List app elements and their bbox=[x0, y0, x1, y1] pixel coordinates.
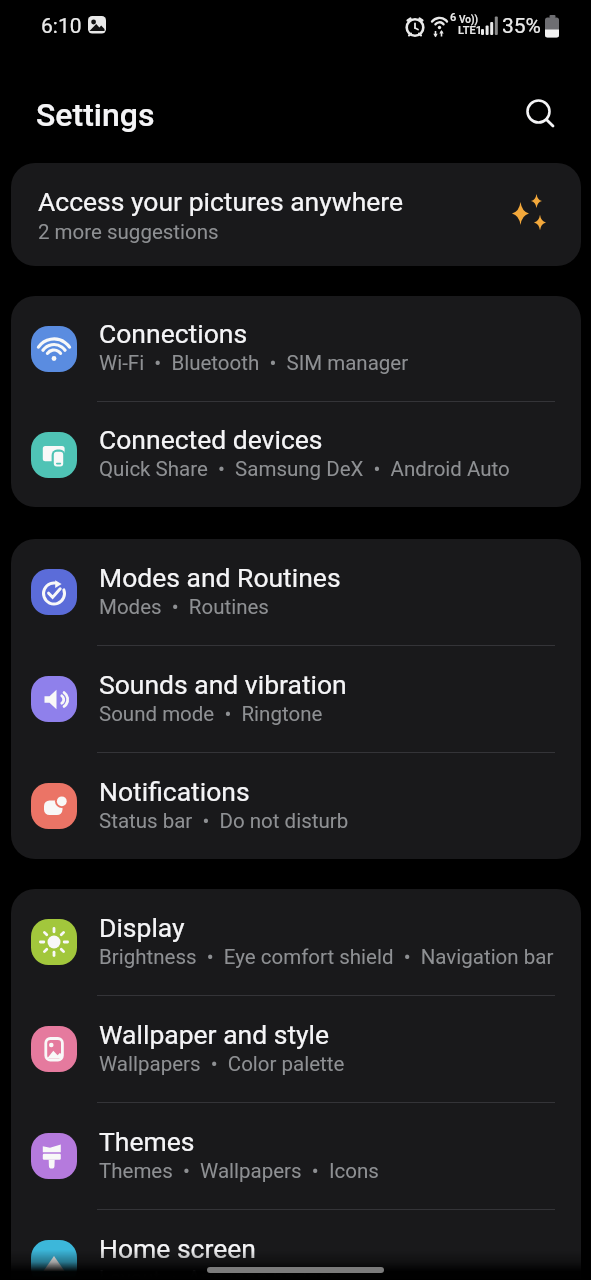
staticText: Vo)) bbox=[459, 14, 479, 26]
staticText: Connections bbox=[99, 318, 248, 349]
button[interactable]: Access your pictures anywhere bbox=[11, 163, 581, 266]
staticText: 6 bbox=[450, 11, 457, 24]
button[interactable]: Display bbox=[11, 889, 581, 995]
staticText: Quick Share • Samsung DeX • Android Auto bbox=[99, 457, 510, 481]
button[interactable]: Sounds and vibration bbox=[11, 646, 581, 752]
staticText: 35% bbox=[502, 14, 541, 39]
staticText: LTE1 bbox=[458, 24, 483, 37]
staticText: Themes bbox=[99, 1126, 195, 1157]
button[interactable]: Notifications bbox=[11, 753, 581, 859]
staticText: Settings bbox=[36, 96, 155, 134]
staticText: Notifications bbox=[99, 776, 250, 807]
staticText: Access your pictures anywhere bbox=[38, 186, 404, 217]
staticText: Brightness • Eye comfort shield • Naviga… bbox=[99, 945, 554, 969]
staticText: Wallpapers • Color palette bbox=[99, 1052, 345, 1076]
button[interactable] bbox=[518, 90, 562, 134]
staticText: 6:10 bbox=[41, 14, 82, 39]
staticText: Sound mode • Ringtone bbox=[99, 702, 323, 726]
staticText: 2 more suggestions bbox=[38, 220, 219, 244]
staticText: Themes • Wallpapers • Icons bbox=[99, 1159, 379, 1183]
staticText: Display bbox=[99, 912, 185, 943]
staticText: Modes • Routines bbox=[99, 595, 269, 619]
staticText: Wi-Fi • Bluetooth • SIM manager bbox=[99, 351, 409, 375]
staticText: Modes and Routines bbox=[99, 562, 341, 593]
button[interactable]: Connected devices bbox=[11, 402, 581, 507]
button[interactable]: Wallpaper and style bbox=[11, 996, 581, 1102]
staticText: Home screen bbox=[99, 1233, 256, 1264]
button[interactable]: Connections bbox=[11, 296, 581, 401]
staticText: Wallpaper and style bbox=[99, 1019, 330, 1050]
button[interactable]: Home screen bbox=[11, 1210, 581, 1280]
staticText: Connected devices bbox=[99, 424, 323, 455]
button[interactable]: Themes bbox=[11, 1103, 581, 1209]
button[interactable]: Modes and Routines bbox=[11, 539, 581, 645]
staticText: Layout • App icon badges bbox=[99, 1266, 341, 1280]
staticText: Sounds and vibration bbox=[99, 669, 347, 700]
staticText: Status bar • Do not disturb bbox=[99, 809, 349, 833]
